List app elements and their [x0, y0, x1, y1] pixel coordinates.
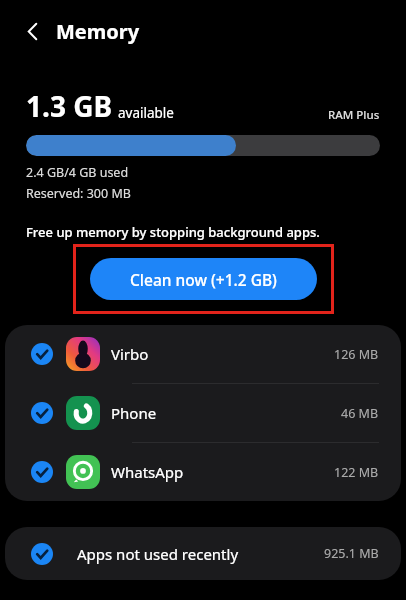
staticText: Virbo	[111, 344, 149, 364]
staticText: RAM Plus	[328, 107, 380, 123]
button[interactable]: Clean now (+1.2 GB)	[90, 258, 317, 300]
staticText: Clean now (+1.2 GB)	[130, 269, 277, 290]
staticText: 2.4 GB/4 GB used	[26, 164, 129, 181]
staticText: WhatsApp	[111, 462, 184, 482]
button[interactable]: Virbo	[5, 325, 401, 383]
staticText: 126 MB	[334, 346, 379, 363]
staticText: 46 MB	[341, 405, 379, 422]
staticText: 1.3 GB	[26, 87, 113, 125]
button[interactable]: Apps not used recently	[5, 527, 401, 580]
staticText: Memory	[56, 18, 140, 45]
staticText: 925.1 MB	[324, 545, 379, 562]
staticText: Phone	[111, 403, 157, 423]
button[interactable]: Back	[12, 11, 52, 51]
staticText: Reserved: 300 MB	[26, 185, 131, 202]
button[interactable]: WhatsApp	[5, 443, 401, 501]
staticText: 122 MB	[334, 464, 379, 481]
staticText: Apps not used recently	[77, 544, 239, 564]
staticText: Free up memory by stopping background ap…	[26, 223, 320, 241]
staticText: available	[118, 104, 174, 122]
button[interactable]: Phone	[5, 384, 401, 442]
